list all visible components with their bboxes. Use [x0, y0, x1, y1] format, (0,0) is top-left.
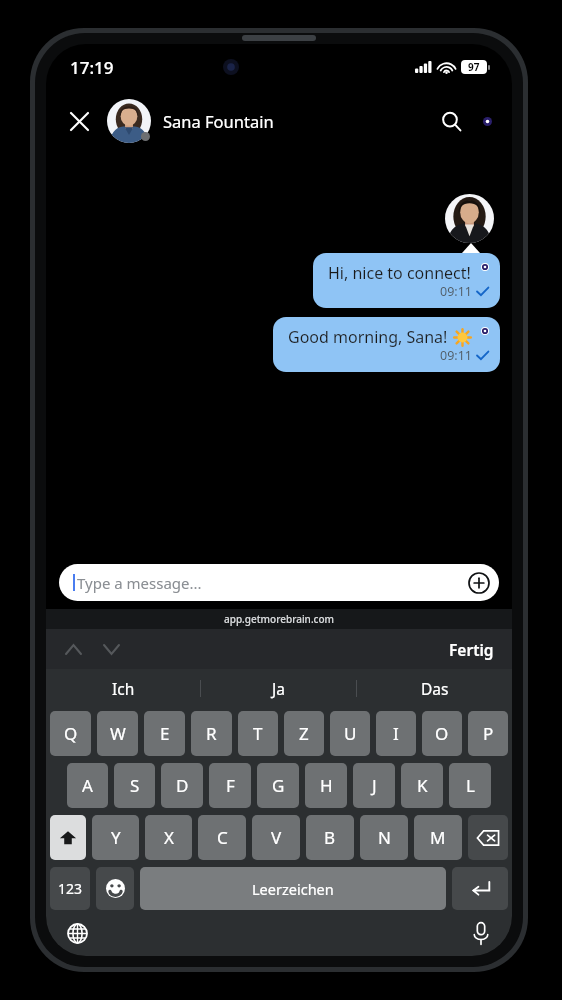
button[interactable]: Voice input: [466, 918, 496, 948]
staticText: Y: [111, 826, 121, 849]
staticText: W: [110, 722, 126, 745]
button[interactable]: Add attachment: [468, 572, 490, 594]
staticText: Good morning, Sana!: [288, 326, 448, 348]
button[interactable]: F: [209, 763, 251, 808]
button[interactable]: S: [114, 763, 155, 808]
button[interactable]: J: [353, 763, 395, 808]
staticText: Sana Fountain: [163, 110, 274, 132]
staticText: 17:19: [70, 56, 114, 79]
staticText: 123: [58, 879, 83, 898]
staticText: Leerzeichen: [252, 879, 334, 899]
staticText: G: [272, 774, 285, 797]
button[interactable]: Ja: [201, 669, 356, 707]
staticText: N: [378, 826, 391, 849]
staticText: E: [160, 722, 170, 745]
staticText: Type a message...: [77, 573, 468, 593]
staticText: Fertig: [449, 639, 494, 660]
button[interactable]: B: [306, 815, 354, 860]
button[interactable]: Close: [62, 104, 96, 138]
staticText: H: [320, 774, 333, 797]
button[interactable]: X: [145, 815, 192, 860]
staticText: B: [324, 826, 336, 849]
button[interactable]: D: [161, 763, 203, 808]
button[interactable]: 123: [50, 867, 90, 910]
button[interactable]: Next field: [98, 636, 124, 662]
staticText: P: [483, 722, 494, 745]
button[interactable]: Z: [284, 711, 324, 756]
button[interactable]: Shift: [50, 815, 86, 860]
staticText: V: [271, 826, 282, 849]
staticText: F: [226, 774, 235, 797]
staticText: M: [430, 826, 446, 849]
button[interactable]: Fertig: [445, 633, 498, 666]
button[interactable]: E: [144, 711, 185, 756]
staticText: Das: [421, 678, 449, 699]
staticText: Ja: [272, 678, 285, 699]
button[interactable]: P: [468, 711, 508, 756]
staticText: app.getmorebrain.com: [224, 612, 335, 626]
staticText: K: [417, 774, 428, 797]
button[interactable]: H: [305, 763, 347, 808]
staticText: L: [466, 774, 475, 797]
button[interactable]: U: [330, 711, 370, 756]
button[interactable]: A: [67, 763, 108, 808]
button[interactable]: Type a message...: [59, 564, 499, 601]
button[interactable]: N: [360, 815, 408, 860]
staticText: Q: [64, 722, 78, 745]
button[interactable]: Leerzeichen: [140, 867, 446, 910]
button[interactable]: Hi, nice to connect!: [313, 253, 500, 308]
button[interactable]: G: [257, 763, 299, 808]
button[interactable]: Y: [92, 815, 139, 860]
button[interactable]: Change keyboard language: [62, 918, 92, 948]
staticText: C: [217, 826, 228, 849]
button[interactable]: Emoji: [96, 867, 134, 910]
staticText: R: [206, 722, 217, 745]
button[interactable]: Q: [50, 711, 91, 756]
staticText: X: [164, 826, 174, 849]
button[interactable]: K: [401, 763, 443, 808]
button[interactable]: Ich: [46, 669, 200, 707]
staticText: 09:11: [440, 283, 472, 300]
staticText: Hi, nice to connect!: [328, 262, 471, 284]
button[interactable]: L: [449, 763, 491, 808]
button[interactable]: Good morning, Sana!: [273, 317, 500, 372]
button[interactable]: R: [191, 711, 232, 756]
button[interactable]: M: [414, 815, 462, 860]
button[interactable]: Das: [357, 669, 512, 707]
staticText: O: [435, 722, 449, 745]
staticText: Z: [299, 722, 309, 745]
button[interactable]: Search: [434, 104, 468, 138]
staticText: T: [253, 722, 263, 745]
staticText: 97: [468, 60, 480, 74]
button[interactable]: Sana Fountain: [107, 99, 434, 143]
button[interactable]: Backspace: [468, 815, 508, 860]
button[interactable]: T: [238, 711, 278, 756]
button[interactable]: Previous field: [60, 636, 86, 662]
staticText: A: [82, 774, 93, 797]
staticText: J: [372, 774, 377, 797]
button[interactable]: O: [422, 711, 462, 756]
staticText: U: [344, 722, 357, 745]
button[interactable]: Return: [452, 867, 508, 910]
staticText: Ich: [112, 678, 135, 699]
staticText: D: [176, 774, 189, 797]
staticText: 09:11: [440, 347, 472, 364]
staticText: S: [130, 774, 140, 797]
button[interactable]: W: [97, 711, 138, 756]
button[interactable]: I: [376, 711, 416, 756]
button[interactable]: More: [478, 112, 496, 130]
button[interactable]: C: [198, 815, 246, 860]
button[interactable]: V: [252, 815, 300, 860]
staticText: I: [393, 722, 399, 745]
